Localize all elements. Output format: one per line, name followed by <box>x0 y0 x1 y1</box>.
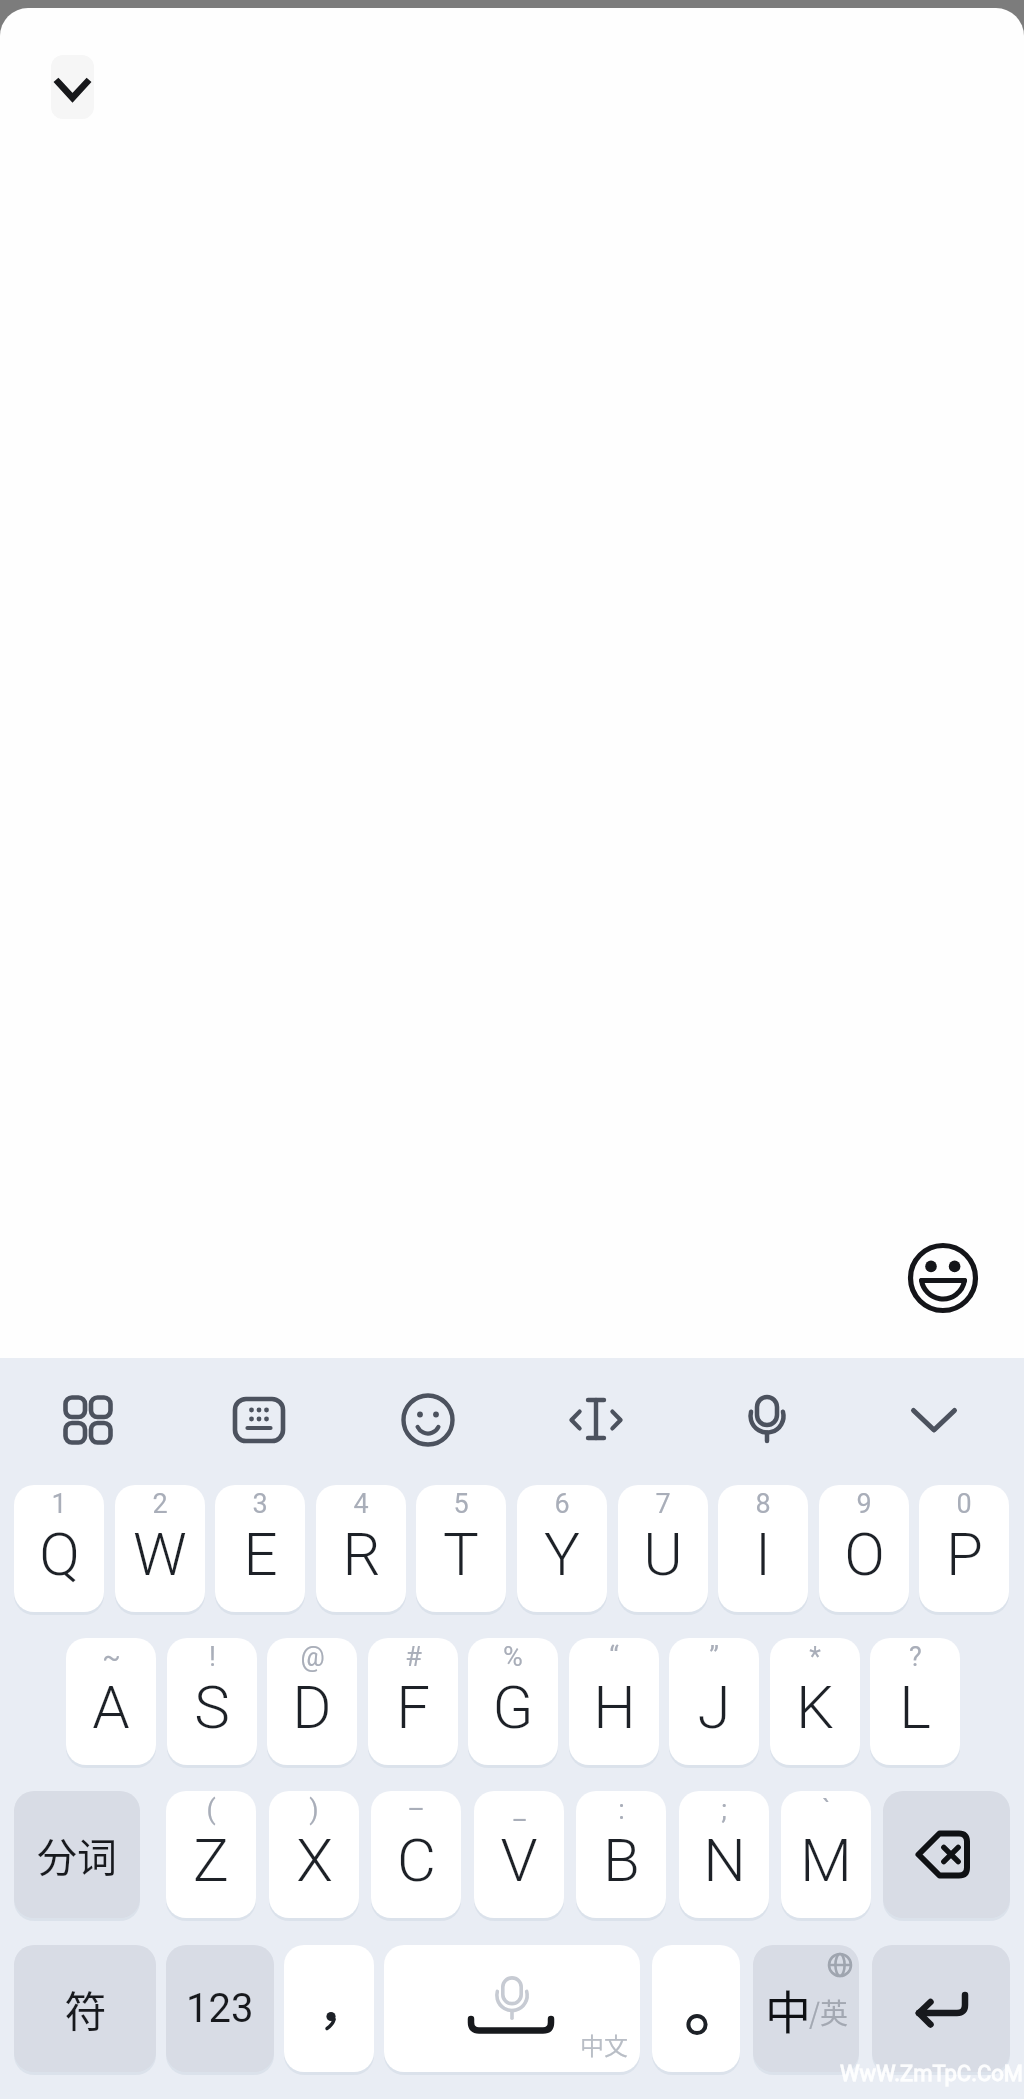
staticText: 中 <box>765 1976 811 2043</box>
button[interactable]: – <box>371 1791 461 1918</box>
button[interactable] <box>725 1378 809 1462</box>
staticText: ? <box>909 1641 922 1673</box>
staticText: S <box>194 1672 230 1742</box>
staticText: ~ <box>102 1641 121 1673</box>
staticText: % <box>503 1641 523 1673</box>
staticText: 4 <box>353 1488 369 1520</box>
staticText: F <box>396 1672 430 1742</box>
button[interactable]: 符 <box>14 1945 156 2072</box>
button[interactable] <box>554 1378 638 1462</box>
button[interactable]: 0 <box>919 1485 1009 1612</box>
staticText: V <box>500 1825 538 1895</box>
button[interactable] <box>51 55 94 119</box>
button[interactable]: @ <box>267 1638 357 1765</box>
staticText: T <box>443 1519 479 1589</box>
staticText: 0 <box>956 1488 972 1520</box>
staticText: _ <box>513 1794 526 1826</box>
button[interactable]: ; <box>679 1791 769 1918</box>
button[interactable] <box>883 1791 1010 1918</box>
staticText: U <box>643 1519 683 1589</box>
button[interactable]: 中文 <box>384 1945 640 2072</box>
staticText: 5 <box>453 1488 469 1520</box>
staticText: 7 <box>655 1488 671 1520</box>
staticText: Z <box>193 1825 229 1895</box>
button[interactable] <box>217 1378 301 1462</box>
staticText: 6 <box>554 1488 570 1520</box>
staticText: I <box>755 1519 771 1589</box>
button[interactable]: 5 <box>416 1485 506 1612</box>
button[interactable]: ` <box>781 1791 871 1918</box>
staticText: G <box>492 1672 534 1742</box>
staticText: WwW.ZmTpC.CoM <box>840 2061 1024 2087</box>
button[interactable]: 4 <box>316 1485 406 1612</box>
button[interactable]: ~ <box>66 1638 156 1765</box>
staticText: 中文 <box>580 2027 628 2062</box>
staticText: – <box>407 1794 425 1826</box>
staticText: “ <box>609 1641 619 1673</box>
staticText: K <box>796 1672 834 1742</box>
button[interactable]: 7 <box>618 1485 708 1612</box>
button[interactable] <box>652 1945 740 2072</box>
staticText: /英 <box>809 1992 848 2033</box>
staticText: B <box>603 1825 640 1895</box>
staticText: 123 <box>186 1985 254 2032</box>
staticText: ) <box>309 1794 319 1826</box>
button[interactable] <box>892 1378 976 1462</box>
staticText: J <box>697 1672 731 1742</box>
staticText: ( <box>206 1794 216 1826</box>
button[interactable]: * <box>770 1638 860 1765</box>
staticText: * <box>809 1641 821 1673</box>
button[interactable]: % <box>468 1638 558 1765</box>
staticText: 3 <box>252 1488 268 1520</box>
staticText: Q <box>39 1519 80 1589</box>
staticText: O <box>844 1519 885 1589</box>
button[interactable]: 2 <box>115 1485 205 1612</box>
button[interactable]: 123 <box>166 1945 274 2072</box>
staticText: N <box>703 1825 746 1895</box>
button[interactable]: _ <box>474 1791 564 1918</box>
staticText: L <box>899 1672 931 1742</box>
staticText: : <box>618 1794 625 1826</box>
staticText: M <box>800 1825 852 1895</box>
button[interactable]: 1 <box>14 1485 104 1612</box>
button[interactable]: 分词 <box>14 1791 140 1918</box>
staticText: # <box>405 1641 422 1673</box>
staticText: X <box>296 1825 333 1895</box>
button[interactable]: ) <box>269 1791 359 1918</box>
button[interactable]: 6 <box>517 1485 607 1612</box>
staticText: ; <box>721 1794 727 1826</box>
staticText: R <box>342 1519 381 1589</box>
staticText: A <box>92 1672 130 1742</box>
staticText: 8 <box>755 1488 771 1520</box>
button[interactable]: “ <box>569 1638 659 1765</box>
button[interactable]: ! <box>167 1638 257 1765</box>
button[interactable] <box>46 1378 130 1462</box>
staticText: @ <box>300 1641 325 1673</box>
button[interactable] <box>386 1378 470 1462</box>
button[interactable] <box>872 1945 1010 2072</box>
staticText: 1 <box>51 1488 67 1520</box>
staticText: ! <box>209 1641 216 1673</box>
button[interactable]: # <box>368 1638 458 1765</box>
button[interactable]: 8 <box>718 1485 808 1612</box>
staticText: Y <box>544 1519 580 1589</box>
staticText: D <box>292 1672 332 1742</box>
button[interactable]: 3 <box>215 1485 305 1612</box>
button[interactable]: ( <box>166 1791 256 1918</box>
staticText: 符 <box>64 1978 107 2039</box>
staticText: H <box>593 1672 636 1742</box>
button[interactable]: : <box>576 1791 666 1918</box>
button[interactable]: ” <box>669 1638 759 1765</box>
staticText: E <box>243 1519 278 1589</box>
staticText: ` <box>822 1794 831 1826</box>
staticText: C <box>397 1825 436 1895</box>
staticText: 9 <box>856 1488 872 1520</box>
staticText: ” <box>709 1641 719 1673</box>
button[interactable]: 9 <box>819 1485 909 1612</box>
button[interactable]: 中 <box>753 1945 859 2072</box>
button[interactable] <box>899 1234 987 1322</box>
button[interactable]: ? <box>870 1638 960 1765</box>
staticText: 2 <box>152 1488 168 1520</box>
button[interactable] <box>284 1945 374 2072</box>
staticText: 分词 <box>37 1826 117 1884</box>
